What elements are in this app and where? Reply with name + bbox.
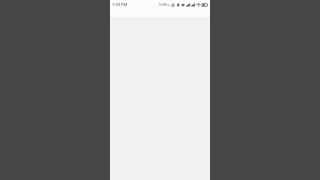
staticText: 0.0K/s	[159, 2, 170, 7]
staticText: 1:09 PM	[112, 2, 128, 7]
